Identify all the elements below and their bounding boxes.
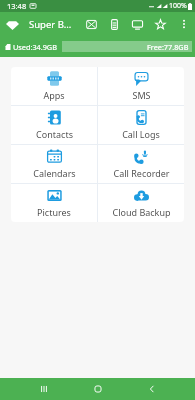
staticText: Free:77.8GB [147,42,189,52]
staticText: Used:34.9GB [13,42,57,52]
staticText: 100% [169,1,187,11]
button[interactable]: Apps [11,67,97,105]
staticText: SMS [132,89,151,101]
button[interactable]: Screen [126,12,149,36]
staticText: Call Logs [122,128,160,140]
button[interactable]: Clean junk [80,12,103,36]
button[interactable]: Call Recorder [98,145,184,183]
button[interactable]: Pictures [11,184,97,222]
button[interactable]: Storage [103,12,126,36]
button[interactable]: More options [172,12,195,36]
button[interactable]: Call Logs [98,106,184,144]
button[interactable]: Recent apps [32,378,56,400]
button[interactable]: Back [140,378,164,400]
button[interactable]: Home [86,378,110,400]
button[interactable]: Contacts [11,106,97,144]
staticText: Apps [43,89,65,101]
staticText: Contacts [36,128,73,140]
button[interactable]: Favorite [149,12,172,36]
staticText: Calendars [33,167,76,179]
button[interactable]: Cloud Backup [98,184,184,222]
button[interactable]: SMS [98,67,184,105]
staticText: Super B... [29,18,72,31]
button[interactable]: Used:34.9GB [3,41,192,52]
staticText: 13:48 [7,1,27,11]
button[interactable]: Calendars [11,145,97,183]
staticText: Pictures [37,206,71,218]
staticText: Call Recorder [113,167,170,179]
staticText: Cloud Backup [112,206,171,218]
